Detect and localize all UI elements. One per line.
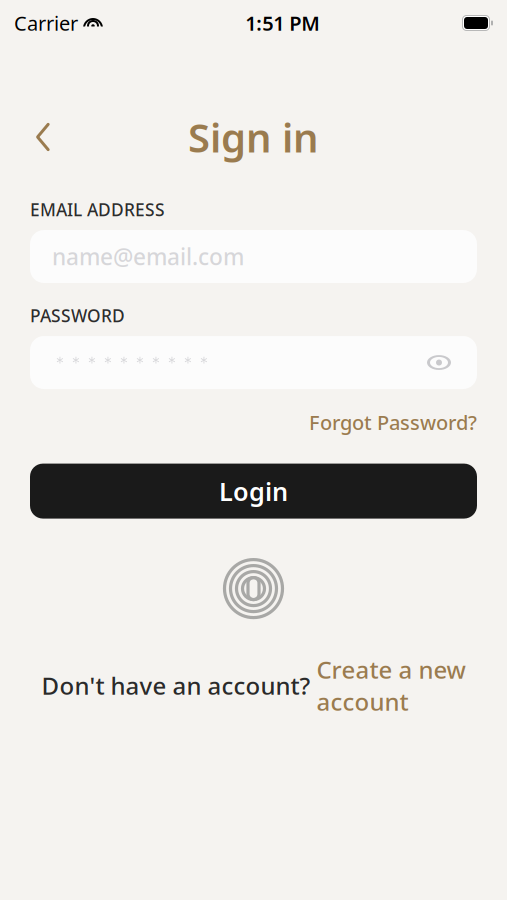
staticText: name@email.com: [52, 241, 244, 272]
staticText: 1:51 PM: [245, 10, 320, 36]
staticText: Carrier: [14, 10, 78, 36]
staticText: Create a new account: [316, 654, 465, 717]
staticText: EMAIL ADDRESS: [30, 198, 165, 221]
button[interactable]: Forgot Password?: [309, 403, 477, 442]
button[interactable]: Back: [0, 111, 56, 163]
staticText: Don't have an account?: [41, 669, 316, 701]
button[interactable]: Login: [30, 464, 477, 519]
button[interactable]: Show password: [423, 340, 455, 384]
staticText: Sign in: [188, 110, 319, 163]
staticText: Login: [219, 474, 288, 508]
button[interactable]: Create a new account: [316, 654, 465, 717]
staticText: PASSWORD: [30, 304, 125, 327]
button[interactable]: Sign in with fingerprint: [212, 546, 294, 632]
staticText: Forgot Password?: [309, 409, 477, 436]
staticText: ＊＊＊＊＊＊＊＊＊＊: [52, 353, 212, 372]
